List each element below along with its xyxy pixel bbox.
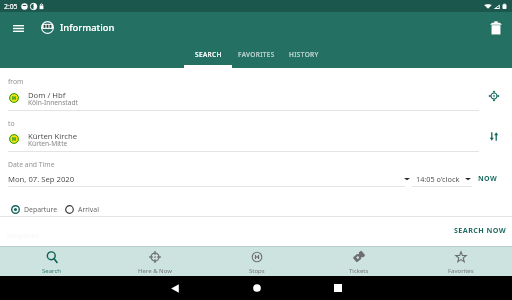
- button[interactable]: FAVORITES: [232, 44, 280, 68]
- button[interactable]: Back: [154, 276, 195, 300]
- staticText: Here & Now: [138, 267, 172, 275]
- button[interactable]: Favorites: [410, 246, 512, 276]
- button[interactable]: Kürten Kirche: [0, 130, 512, 148]
- staticText: Date and Time: [8, 160, 55, 169]
- button[interactable]: Departure: [11, 203, 58, 215]
- button[interactable]: Recent apps: [317, 276, 358, 300]
- button[interactable]: Home: [236, 276, 277, 300]
- staticText: Information: [60, 21, 115, 34]
- button[interactable]: Here & Now: [103, 246, 206, 276]
- staticText: Search: [42, 267, 61, 275]
- button[interactable]: Mon, 07. Sep 2020: [6, 172, 410, 185]
- staticText: Mon, 07. Sep 2020: [8, 174, 75, 184]
- button[interactable]: Use current location: [484, 87, 504, 105]
- staticText: SEARCH: [195, 50, 222, 59]
- staticText: 14:05 o'clock: [416, 174, 460, 184]
- button[interactable]: SEARCH: [184, 44, 232, 68]
- staticText: 2:05: [4, 2, 18, 11]
- button[interactable]: Delete: [485, 17, 507, 39]
- staticText: Favorites: [448, 267, 474, 275]
- staticText: NOW: [478, 174, 498, 184]
- button[interactable]: Dom / Hbf: [0, 89, 512, 107]
- button[interactable]: Search: [0, 246, 103, 276]
- button[interactable]: Open navigation menu: [7, 17, 29, 39]
- button[interactable]: SEARCH NOW: [452, 223, 509, 237]
- staticText: Arrival: [78, 205, 100, 214]
- button[interactable]: Tickets: [308, 246, 410, 276]
- button[interactable]: HISTORY: [280, 44, 328, 68]
- button[interactable]: Swap from and to: [484, 127, 504, 145]
- staticText: Dom / Hbf: [28, 90, 66, 100]
- staticText: Stops: [249, 267, 265, 275]
- staticText: Kürten-Mitte: [28, 139, 68, 148]
- staticText: Kürten Kirche: [28, 131, 78, 141]
- staticText: Tickets: [349, 267, 369, 275]
- button[interactable]: 14:05 o'clock: [411, 172, 472, 185]
- button[interactable]: Arrival: [65, 203, 100, 215]
- staticText: FAVORITES: [238, 50, 275, 59]
- staticText: Köln-Innenstadt: [28, 98, 78, 107]
- button[interactable]: NOW: [477, 172, 499, 185]
- staticText: to: [8, 119, 15, 128]
- staticText: HISTORY: [289, 50, 319, 59]
- staticText: SEARCH NOW: [454, 225, 507, 235]
- button[interactable]: Stops: [206, 246, 308, 276]
- staticText: Departure: [24, 205, 58, 214]
- staticText: from: [8, 77, 24, 86]
